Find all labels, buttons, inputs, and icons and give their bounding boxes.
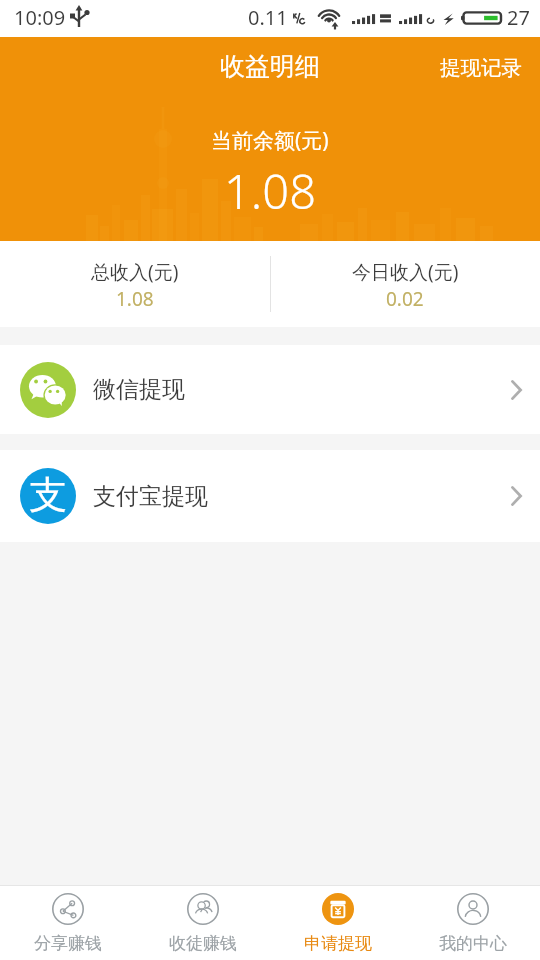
staticText: 支 xyxy=(29,471,67,519)
staticText: 0.11 xyxy=(248,4,288,31)
staticText: 今日收入(元) xyxy=(352,259,459,285)
staticText: 分享赚钱 xyxy=(34,933,102,954)
staticText: 我的中心 xyxy=(439,933,507,954)
staticText: 当前余额(元) xyxy=(211,126,329,155)
staticText: 1.08 xyxy=(224,159,316,223)
staticText: 1.08 xyxy=(116,286,154,312)
button[interactable]: 支 xyxy=(0,450,540,542)
staticText: 收益明细 xyxy=(220,51,320,82)
staticText: 申请提现 xyxy=(304,933,372,954)
staticText: 微信提现 xyxy=(93,375,185,404)
staticText: 支付宝提现 xyxy=(93,482,208,511)
staticText: 提现记录 xyxy=(440,55,522,81)
button[interactable]: 收徒赚钱 xyxy=(135,886,270,960)
staticText: 27 xyxy=(507,4,530,31)
staticText: 10:09 xyxy=(14,4,66,31)
staticText: 0.02 xyxy=(386,286,424,312)
button[interactable]: 分享赚钱 xyxy=(0,886,135,960)
staticText: 总收入(元) xyxy=(91,259,179,285)
button[interactable]: 微信提现 xyxy=(0,345,540,434)
button[interactable]: 我的中心 xyxy=(405,886,540,960)
button[interactable]: 申请提现 xyxy=(270,886,405,960)
staticText: 收徒赚钱 xyxy=(169,933,237,954)
button[interactable]: 提现记录 xyxy=(422,42,540,92)
